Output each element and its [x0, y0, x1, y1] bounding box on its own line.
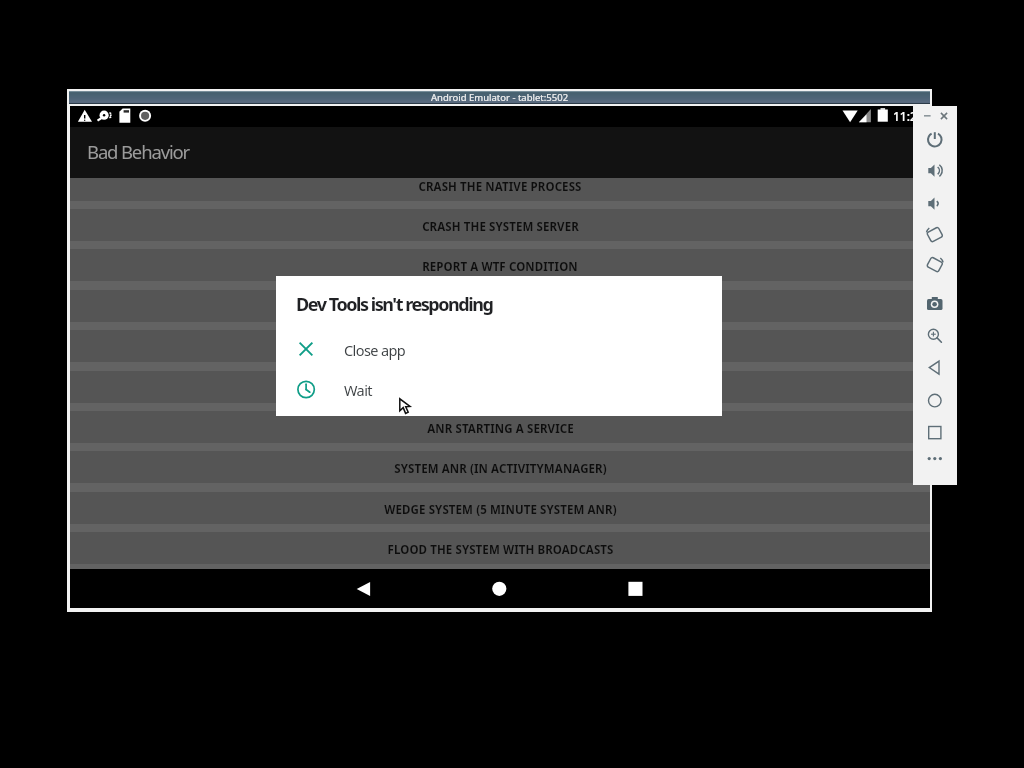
button[interactable]: FLOOD THE SYSTEM WITH BROADCASTS: [70, 532, 930, 564]
button[interactable]: ANR STARTING A SERVICE: [70, 411, 930, 443]
button[interactable]: SYSTEM ANR (IN ACTIVITYMANAGER): [70, 451, 930, 483]
button[interactable]: Overview: [923, 420, 947, 444]
button[interactable]: Power: [923, 127, 947, 151]
button[interactable]: Back: [349, 575, 377, 603]
staticText: Android Emulator - tablet:5502: [431, 91, 569, 104]
button[interactable]: Take screenshot: [923, 291, 947, 315]
button[interactable]: Rotate left: [923, 222, 947, 246]
button[interactable]: Minimize: [918, 107, 936, 125]
staticText: WEDGE SYSTEM (5 MINUTE SYSTEM ANR): [384, 502, 617, 518]
button[interactable]: APP ANR (IGNORING INPUT): [70, 330, 930, 362]
staticText: APP CRASH (UNCAUGHT EXCEPTION): [395, 300, 606, 316]
button[interactable]: Home: [485, 575, 513, 603]
button[interactable]: Volume up: [923, 158, 947, 182]
button[interactable]: CRASH THE NATIVE PROCESS: [70, 169, 930, 201]
staticText: FLOOD THE SYSTEM WITH BROADCASTS: [387, 542, 614, 558]
button[interactable]: Home: [923, 388, 947, 412]
staticText: CRASH THE SYSTEM SERVER: [422, 219, 579, 235]
button[interactable]: Zoom: [923, 323, 947, 347]
button[interactable]: More: [923, 446, 947, 470]
button[interactable]: Volume down: [923, 191, 947, 215]
button[interactable]: APP CRASH (UNCAUGHT EXCEPTION): [70, 290, 930, 322]
button[interactable]: REPORT A WTF CONDITION: [70, 249, 930, 281]
staticText: CRASH THE NATIVE PROCESS: [418, 179, 582, 195]
staticText: REPORT A WTF CONDITION: [422, 259, 578, 275]
button[interactable]: APP ANR (IN BROADCAST RECEIVER): [70, 371, 930, 403]
button[interactable]: Close: [935, 107, 953, 125]
staticText: Dev Tools isn't responding: [296, 292, 493, 317]
button[interactable]: Back: [923, 355, 947, 379]
staticText: SYSTEM ANR (IN ACTIVITYMANAGER): [394, 461, 607, 477]
staticText: 11:25: [893, 108, 924, 124]
staticText: Wait: [344, 380, 372, 400]
staticText: ANR STARTING A SERVICE: [427, 421, 574, 437]
button[interactable]: Rotate right: [923, 252, 947, 276]
button[interactable]: Recent apps: [621, 575, 649, 603]
button[interactable]: Close app: [276, 331, 722, 367]
staticText: Bad Behavior: [87, 139, 190, 164]
staticText: Close app: [344, 340, 406, 360]
button[interactable]: Wait: [276, 371, 722, 407]
button[interactable]: CRASH THE SYSTEM SERVER: [70, 209, 930, 241]
button[interactable]: WEDGE SYSTEM (5 MINUTE SYSTEM ANR): [70, 492, 930, 524]
